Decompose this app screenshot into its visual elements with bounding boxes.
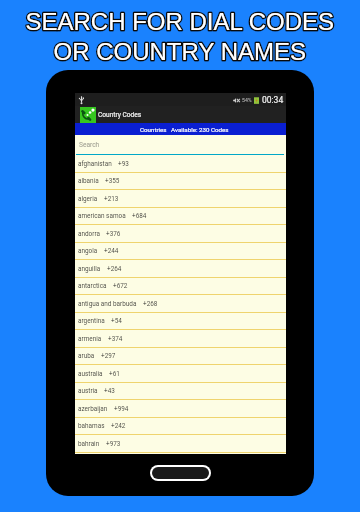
staticText: +684 <box>132 212 147 220</box>
staticText: +61 <box>109 370 120 378</box>
staticText: +672 <box>113 282 128 290</box>
button[interactable]: andorra <box>75 225 286 243</box>
staticText: aruba <box>78 352 95 360</box>
button[interactable]: azerbaijan <box>75 400 286 418</box>
staticText: azerbaijan <box>78 405 108 413</box>
staticText: Countries Available: 230 Codes <box>140 126 229 133</box>
button[interactable]: Home <box>152 467 209 479</box>
button[interactable]: algeria <box>75 190 286 208</box>
staticText: +994 <box>114 405 129 413</box>
other: Sound muted <box>233 97 240 104</box>
staticText: american samoa <box>78 212 126 220</box>
staticText: argentina <box>78 317 105 325</box>
button[interactable]: austria <box>75 382 286 400</box>
staticText: +268 <box>143 300 158 308</box>
staticText: bahrain <box>78 440 100 448</box>
staticText: angola <box>78 247 98 255</box>
button[interactable]: armenia <box>75 330 286 348</box>
staticText: australia <box>78 370 103 378</box>
button[interactable]: anguilla <box>75 260 286 278</box>
staticText: +242 <box>111 422 126 430</box>
button[interactable]: antarctica <box>75 277 286 295</box>
staticText: +374 <box>108 335 123 343</box>
staticText: antigua and barbuda <box>78 300 137 308</box>
button[interactable]: australia <box>75 365 286 383</box>
staticText: Country Codes <box>98 111 142 119</box>
staticText: +973 <box>106 440 121 448</box>
button[interactable]: american samoa <box>75 207 286 225</box>
button[interactable]: afghanistan <box>75 155 286 173</box>
staticText: +43 <box>104 387 115 395</box>
staticText: bahamas <box>78 422 105 430</box>
staticText: austria <box>78 387 98 395</box>
button[interactable]: Countries Available: 230 Codes <box>75 123 286 135</box>
staticText: afghanistan <box>78 160 112 168</box>
staticText: armenia <box>78 335 102 343</box>
button[interactable]: angola <box>75 242 286 260</box>
staticText: 54% <box>242 97 252 103</box>
other: USB connected <box>79 96 84 104</box>
button[interactable]: albania <box>75 172 286 190</box>
staticText: +297 <box>101 352 116 360</box>
staticText: algeria <box>78 195 98 203</box>
staticText: +54 <box>111 317 122 325</box>
staticText: +376 <box>106 230 121 238</box>
staticText: +93 <box>118 160 129 168</box>
staticText: albania <box>78 177 99 185</box>
staticText: Search <box>79 141 100 149</box>
button[interactable]: aruba <box>75 347 286 365</box>
button[interactable]: antigua and barbuda <box>75 295 286 313</box>
staticText: andorra <box>78 230 100 238</box>
staticText: +213 <box>104 195 119 203</box>
staticText: +355 <box>105 177 120 185</box>
staticText: anguilla <box>78 265 101 273</box>
button[interactable]: bahrain <box>75 435 286 453</box>
staticText: antarctica <box>78 282 107 290</box>
staticText: +264 <box>107 265 122 273</box>
button[interactable]: bahamas <box>75 417 286 435</box>
staticText: +244 <box>104 247 119 255</box>
button[interactable]: argentina <box>75 312 286 330</box>
staticText: 00:34 <box>262 95 284 105</box>
button[interactable]: Search <box>75 135 286 155</box>
